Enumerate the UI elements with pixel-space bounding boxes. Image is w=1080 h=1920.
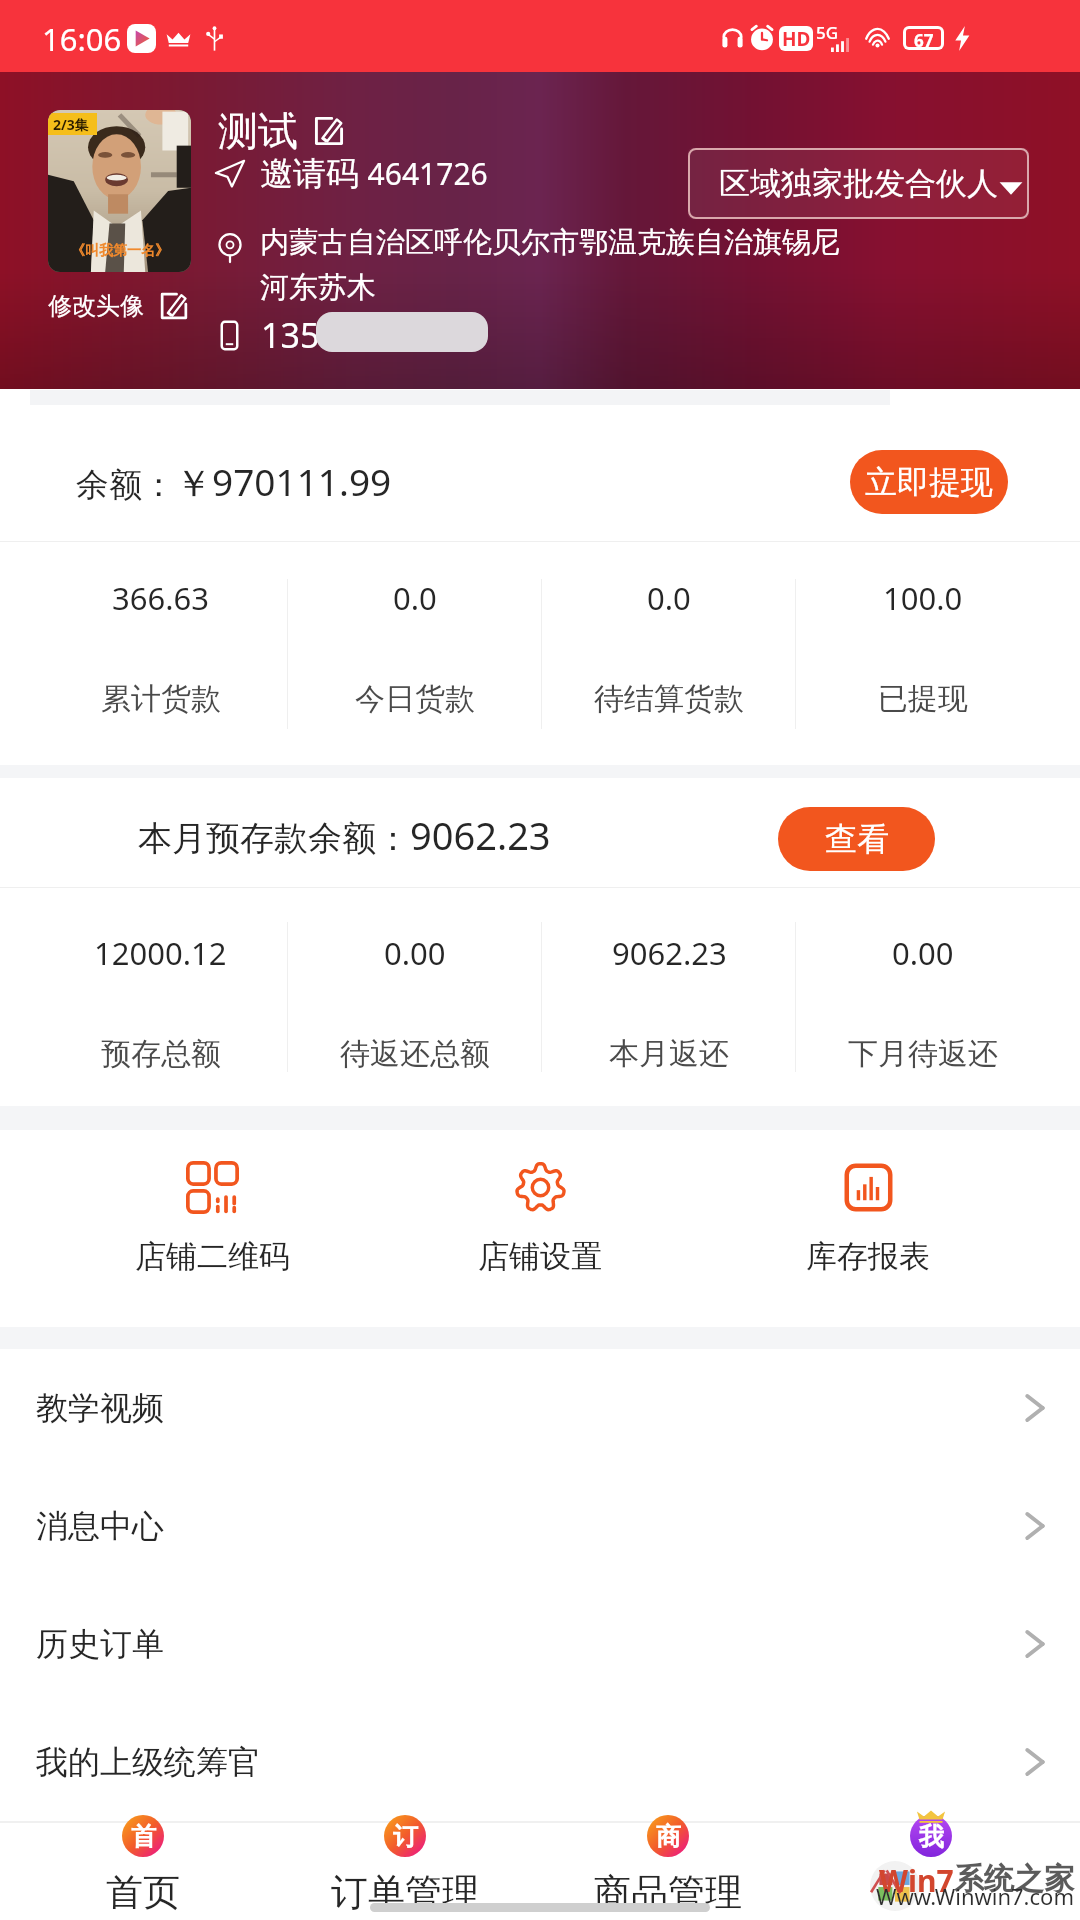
button[interactable]: 我的上级统筹官	[0, 1703, 1080, 1821]
staticText: 已提现	[878, 680, 968, 718]
staticText: 邀请码 4641726	[260, 150, 488, 195]
staticText: 9062.23	[612, 932, 727, 974]
staticText: 订单管理	[331, 1869, 479, 1916]
staticText: Win7	[879, 1860, 954, 1901]
staticText: 12000.12	[94, 932, 227, 974]
staticText: 教学视频	[36, 1388, 164, 1428]
staticText: 《叫我第一名》	[71, 242, 169, 260]
button[interactable]: 历史订单	[0, 1585, 1080, 1703]
staticText: 订	[393, 1821, 418, 1852]
button[interactable]: 我的	[799, 1821, 1062, 1920]
button[interactable]: 立即提现	[850, 450, 1008, 514]
staticText: 我	[919, 1821, 944, 1852]
button[interactable]: 消息中心	[0, 1467, 1080, 1585]
staticText: 今日货款	[355, 680, 475, 718]
staticText: 店铺二维码	[135, 1237, 290, 1276]
staticText: 下月待返还	[848, 1035, 998, 1073]
button[interactable]: Edit name	[312, 114, 346, 148]
staticText: 商	[656, 1821, 681, 1852]
staticText: 本月返还	[609, 1035, 729, 1073]
button[interactable]: 店铺设置	[376, 1130, 704, 1327]
staticText: 本月预存款余额：9062.23	[138, 809, 551, 861]
staticText: 135	[261, 312, 320, 358]
staticText: 修改头像	[48, 291, 144, 321]
staticText: 我的上级统筹官	[36, 1742, 260, 1782]
button[interactable]: 商	[536, 1821, 799, 1920]
staticText: HD	[782, 26, 811, 51]
staticText: Www.Winwin7.com	[876, 1881, 1074, 1911]
staticText: 系统之家	[954, 1860, 1074, 1898]
staticText: 商品管理	[594, 1869, 742, 1916]
staticText: 立即提现	[865, 462, 993, 502]
staticText: 区域独家批发合伙人	[719, 164, 998, 203]
staticText: 累计货款	[101, 680, 221, 718]
staticText: 待返还总额	[340, 1035, 490, 1073]
staticText: 100.0	[883, 577, 963, 619]
staticText: 店铺设置	[478, 1237, 602, 1276]
staticText: 余额：￥970111.99	[76, 456, 392, 507]
button[interactable]: 区域独家批发合伙人	[688, 148, 1029, 219]
button[interactable]: 订	[274, 1821, 536, 1920]
staticText: 预存总额	[101, 1035, 221, 1073]
staticText: 0.00	[892, 932, 954, 974]
button[interactable]: 店铺二维码	[48, 1130, 376, 1327]
staticText: 查看	[825, 819, 889, 859]
staticText: 16:06	[42, 18, 122, 60]
button[interactable]: Avatar	[48, 110, 191, 272]
staticText: 内蒙古自治区呼伦贝尔市鄂温克族自治旗锡尼 河东苏木	[260, 224, 840, 305]
staticText: 待结算货款	[594, 680, 744, 718]
staticText: 测试	[218, 106, 298, 156]
staticText: 2/3集	[53, 115, 89, 134]
button[interactable]: 库存报表	[704, 1130, 1032, 1327]
staticText: 消息中心	[36, 1506, 164, 1546]
staticText: 历史订单	[36, 1624, 164, 1664]
staticText: 0.00	[384, 932, 446, 974]
button[interactable]: 首	[12, 1821, 274, 1920]
button[interactable]: 修改头像	[48, 290, 190, 322]
staticText: 0.0	[647, 577, 691, 619]
staticText: 库存报表	[806, 1237, 930, 1276]
button[interactable]: 教学视频	[0, 1349, 1080, 1467]
button[interactable]: 查看	[778, 807, 935, 871]
staticText: 67	[914, 29, 934, 47]
staticText: 5G	[816, 21, 839, 44]
staticText: 0.0	[393, 577, 437, 619]
staticText: 366.63	[112, 577, 209, 619]
staticText: 首	[131, 1821, 156, 1852]
staticText: 首页	[106, 1869, 180, 1916]
